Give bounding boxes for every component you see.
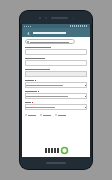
button[interactable] (55, 114, 66, 116)
button[interactable] (25, 39, 75, 44)
button[interactable] (25, 60, 87, 66)
button[interactable] (25, 114, 36, 116)
button[interactable] (25, 93, 87, 99)
button[interactable] (40, 114, 51, 116)
button[interactable] (25, 49, 87, 55)
other: Recycle logo (61, 147, 68, 154)
button[interactable] (25, 104, 87, 110)
button[interactable] (25, 82, 87, 88)
button[interactable] (25, 71, 87, 77)
button[interactable]: Back (25, 30, 31, 36)
